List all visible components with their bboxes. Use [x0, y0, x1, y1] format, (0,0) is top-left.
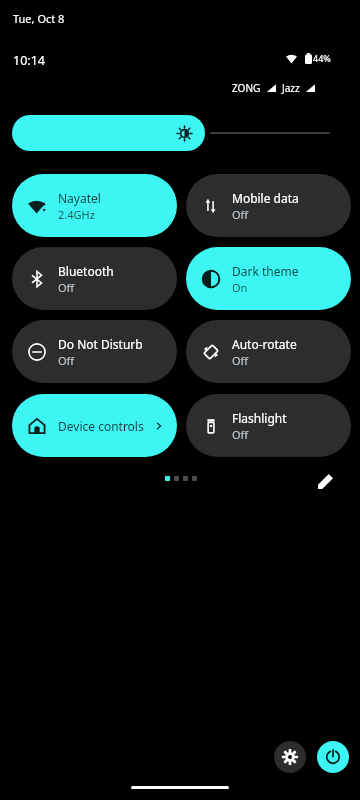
staticText: Do Not Disturb — [58, 336, 143, 352]
button[interactable]: Device controls — [12, 394, 177, 457]
staticText: 10:14 — [13, 52, 45, 69]
staticText: Tue, Oct 8 — [13, 11, 65, 26]
staticText: Bluetooth — [58, 263, 114, 279]
staticText: Auto-rotate — [232, 336, 297, 352]
button[interactable]: Edit tiles — [313, 469, 337, 493]
staticText: Off — [232, 207, 249, 222]
staticText: Off — [58, 280, 75, 295]
button[interactable]: Settings — [274, 741, 306, 773]
staticText: Dark theme — [232, 263, 299, 279]
button[interactable]: Nayatel — [12, 174, 177, 237]
staticText: Off — [232, 353, 249, 368]
button[interactable]: Do Not Disturb — [12, 320, 177, 383]
button[interactable]: Flashlight — [186, 394, 351, 457]
button[interactable]: Dark theme — [186, 247, 351, 310]
button[interactable]: Mobile data — [186, 174, 351, 237]
staticText: Device controls — [58, 418, 144, 434]
staticText: ZONG — [232, 81, 261, 95]
staticText: 44% — [313, 52, 331, 64]
staticText: Nayatel — [58, 190, 101, 206]
button[interactable]: Power — [317, 741, 349, 773]
staticText: On — [232, 280, 248, 295]
button[interactable]: Brightness — [12, 115, 205, 151]
staticText: Off — [232, 427, 249, 442]
staticText: Off — [58, 353, 75, 368]
button[interactable]: Auto-rotate — [186, 320, 351, 383]
staticText: Mobile data — [232, 190, 299, 206]
staticText: 2.4GHz — [58, 207, 95, 222]
button[interactable]: Bluetooth — [12, 247, 177, 310]
staticText: Jazz — [282, 81, 300, 95]
staticText: Flashlight — [232, 410, 287, 426]
